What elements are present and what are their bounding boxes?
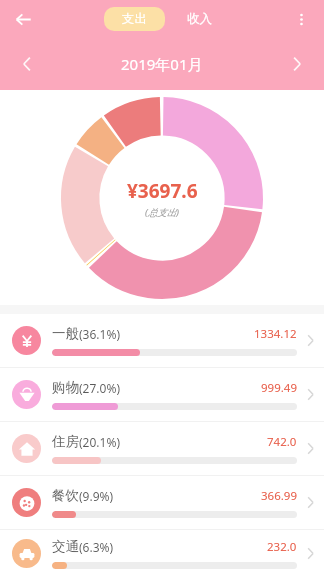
button[interactable]: 支出 <box>104 7 165 31</box>
button[interactable]: 购物 <box>0 368 324 421</box>
staticText: 742.0 <box>267 434 297 450</box>
staticText: 一般 <box>52 325 79 342</box>
button[interactable]: 餐饮 <box>0 476 324 529</box>
staticText: (总支出) <box>145 206 180 219</box>
staticText: 232.0 <box>267 539 297 555</box>
staticText: 2019年01月 <box>121 54 203 74</box>
staticText: (9.9%) <box>79 488 114 504</box>
staticText: 餐饮 <box>52 487 79 504</box>
staticText: 住房 <box>52 433 79 450</box>
staticText: (36.1%) <box>79 326 120 342</box>
staticText: ¥3697.6 <box>127 178 198 204</box>
staticText: 支出 <box>122 11 147 27</box>
staticText: (27.0%) <box>79 380 120 396</box>
button[interactable]: 住房 <box>0 422 324 475</box>
staticText: 1334.12 <box>254 326 297 342</box>
staticText: 购物 <box>52 379 79 396</box>
button[interactable]: 收入 <box>179 7 220 31</box>
button[interactable]: 交通 <box>0 530 324 576</box>
button[interactable]: Previous month <box>10 47 44 81</box>
button[interactable]: Back <box>5 1 41 37</box>
staticText: 366.99 <box>261 488 297 504</box>
staticText: 交通 <box>52 538 79 555</box>
staticText: (6.3%) <box>79 539 114 555</box>
button[interactable]: More options <box>286 4 316 34</box>
staticText: 收入 <box>187 11 212 27</box>
staticText: (20.1%) <box>79 434 120 450</box>
button[interactable]: Next month <box>280 47 314 81</box>
button[interactable]: 一般 <box>0 314 324 367</box>
staticText: 999.49 <box>261 380 297 396</box>
